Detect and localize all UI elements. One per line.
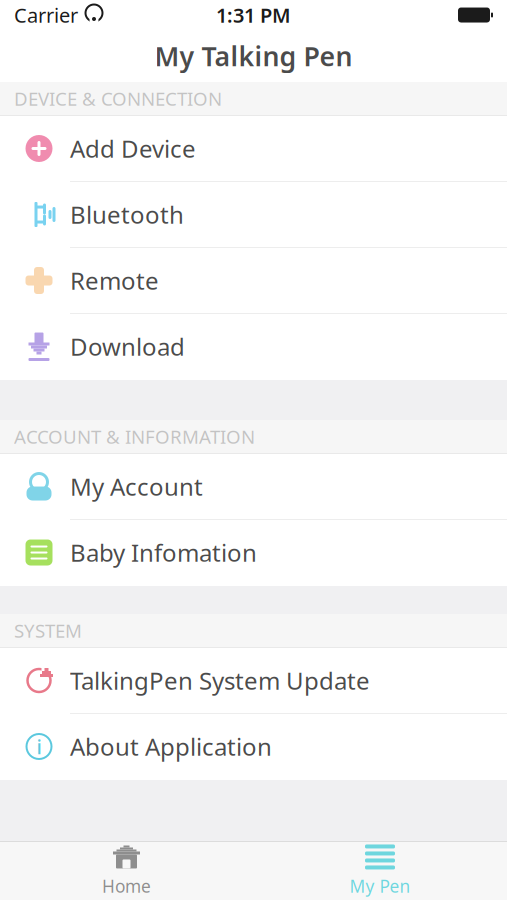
staticText: Baby Infomation — [70, 537, 257, 568]
button[interactable]: TalkingPen System Update — [0, 648, 507, 714]
button[interactable]: Home — [0, 842, 253, 900]
staticText: My Account — [70, 471, 203, 502]
staticText: i — [36, 733, 41, 760]
staticText: ACCOUNT & INFORMATION — [14, 424, 255, 449]
staticText: My Talking Pen — [154, 38, 352, 74]
staticText: Bluetooth — [70, 199, 184, 230]
staticText: DEVICE & CONNECTION — [14, 86, 222, 111]
staticText: Add Device — [70, 133, 196, 164]
button[interactable]: i — [0, 714, 507, 780]
button[interactable]: Baby Infomation — [0, 520, 507, 586]
button[interactable]: My Account — [0, 454, 507, 520]
staticText: Remote — [70, 265, 159, 296]
button[interactable]: My Pen — [253, 842, 507, 900]
button[interactable]: Bluetooth — [0, 182, 507, 248]
staticText: 1:31 PM — [216, 2, 291, 28]
staticText: My Pen — [349, 874, 410, 897]
button[interactable]: Download — [0, 314, 507, 380]
staticText: SYSTEM — [14, 618, 82, 643]
staticText: Carrier — [14, 2, 78, 28]
staticText: About Application — [70, 731, 272, 762]
button[interactable]: Remote — [0, 248, 507, 314]
staticText: Download — [70, 331, 185, 362]
staticText: TalkingPen System Update — [70, 665, 370, 696]
staticText: Home — [102, 874, 151, 897]
button[interactable]: Add Device — [0, 116, 507, 182]
